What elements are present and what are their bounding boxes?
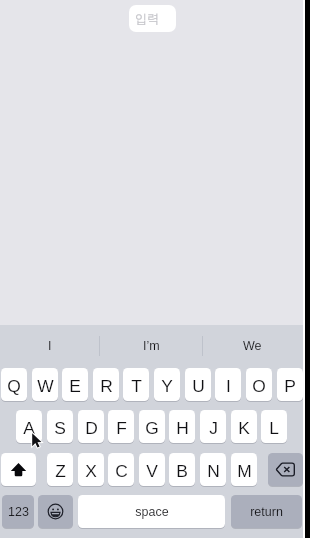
button[interactable]: A [16,410,42,443]
staticText: A [23,418,35,437]
staticText: We [243,339,262,353]
button[interactable]: L [261,410,287,443]
staticText: U [192,376,205,395]
staticText: X [85,461,97,480]
button[interactable]: I [0,327,100,364]
staticText: K [238,418,250,437]
button[interactable]: 123 [2,495,34,528]
staticText: D [85,418,98,437]
button[interactable]: I [215,368,241,401]
button[interactable]: Z [47,453,73,486]
button[interactable]: Shift [1,453,36,486]
staticText: B [176,461,188,480]
button[interactable]: U [185,368,211,401]
button[interactable]: N [200,453,226,486]
button[interactable]: K [231,410,257,443]
staticText: 입력 [135,11,160,26]
staticText: S [54,418,66,437]
button[interactable]: M [231,453,257,486]
staticText: Y [161,376,173,395]
staticText: V [146,461,158,480]
staticText: I’m [143,339,160,353]
staticText: N [207,461,220,480]
staticText: 123 [8,505,29,519]
button[interactable]: G [139,410,165,443]
button[interactable]: We [202,327,302,364]
staticText: C [115,461,128,480]
staticText: J [209,418,218,437]
button[interactable]: S [47,410,73,443]
staticText: F [116,418,127,437]
staticText: W [37,376,54,395]
staticText: P [284,376,296,395]
button[interactable]: Q [1,368,27,401]
staticText: I [226,376,231,395]
button[interactable]: Emoji [38,495,73,528]
button[interactable]: X [78,453,104,486]
staticText: return [250,505,283,519]
button[interactable]: return [231,495,302,528]
staticText: Q [7,376,21,395]
staticText: space [135,505,169,519]
button[interactable]: Y [154,368,180,401]
staticText: L [269,418,279,437]
staticText: R [100,376,113,395]
staticText: M [237,461,252,480]
button[interactable]: V [139,453,165,486]
button[interactable]: P [277,368,303,401]
button[interactable]: C [108,453,134,486]
button[interactable]: J [200,410,226,443]
button[interactable]: D [78,410,104,443]
button[interactable]: I’m [101,327,201,364]
staticText: Z [55,461,66,480]
button[interactable]: F [108,410,134,443]
button[interactable]: W [32,368,58,401]
button[interactable]: H [169,410,195,443]
button[interactable]: R [93,368,119,401]
button[interactable]: space [78,495,225,528]
button[interactable]: 입력 [129,5,176,32]
staticText: O [252,376,266,395]
staticText: H [176,418,189,437]
button[interactable]: O [246,368,272,401]
staticText: E [69,376,81,395]
button[interactable]: E [62,368,88,401]
button[interactable]: B [169,453,195,486]
button[interactable]: T [123,368,149,401]
staticText: G [145,418,159,437]
staticText: I [48,339,52,353]
button[interactable]: Backspace [268,453,303,486]
staticText: T [131,376,142,395]
